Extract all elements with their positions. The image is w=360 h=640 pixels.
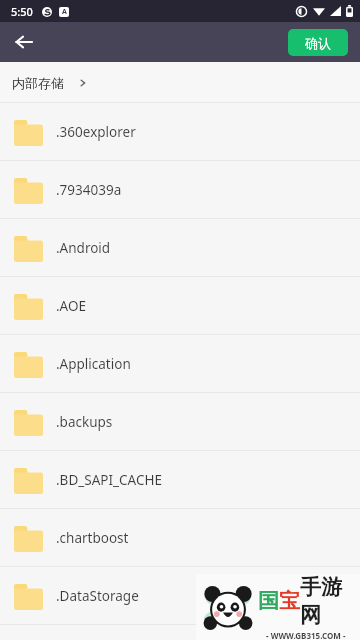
button[interactable]: .dianxinos xyxy=(0,625,360,640)
staticText: .7934039a xyxy=(56,181,122,199)
staticText: .chartboost xyxy=(56,529,129,547)
button[interactable]: Back xyxy=(6,24,42,60)
button[interactable]: .AOE xyxy=(0,277,360,335)
button[interactable]: .DataStorage xyxy=(0,567,360,625)
staticText: 确认 xyxy=(305,35,331,51)
staticText: .DataStorage xyxy=(56,587,139,605)
staticText: .BD_SAPI_CACHE xyxy=(56,471,162,489)
button[interactable]: .chartboost xyxy=(0,509,360,567)
button[interactable]: .backups xyxy=(0,393,360,451)
staticText: .360explorer xyxy=(56,123,136,141)
button[interactable]: .Android xyxy=(0,219,360,277)
button[interactable]: 内部存储 xyxy=(12,75,88,91)
staticText: - WWW.GB315.COM - xyxy=(266,630,346,640)
button[interactable]: .360explorer xyxy=(0,103,360,161)
button[interactable]: .Application xyxy=(0,335,360,393)
staticText: 内部存储 xyxy=(12,75,64,91)
staticText: .backups xyxy=(56,413,113,431)
staticText: 国 xyxy=(258,588,279,614)
staticText: 手游网 xyxy=(300,574,354,628)
staticText: .AOE xyxy=(56,297,87,315)
staticText: A xyxy=(62,7,67,17)
staticText: 宝 xyxy=(279,588,300,614)
button[interactable]: 确认 xyxy=(288,29,348,56)
staticText: .Android xyxy=(56,239,111,257)
staticText: 5:50 xyxy=(11,4,33,19)
button[interactable]: .7934039a xyxy=(0,161,360,219)
staticText: .Application xyxy=(56,355,131,373)
button[interactable]: .BD_SAPI_CACHE xyxy=(0,451,360,509)
